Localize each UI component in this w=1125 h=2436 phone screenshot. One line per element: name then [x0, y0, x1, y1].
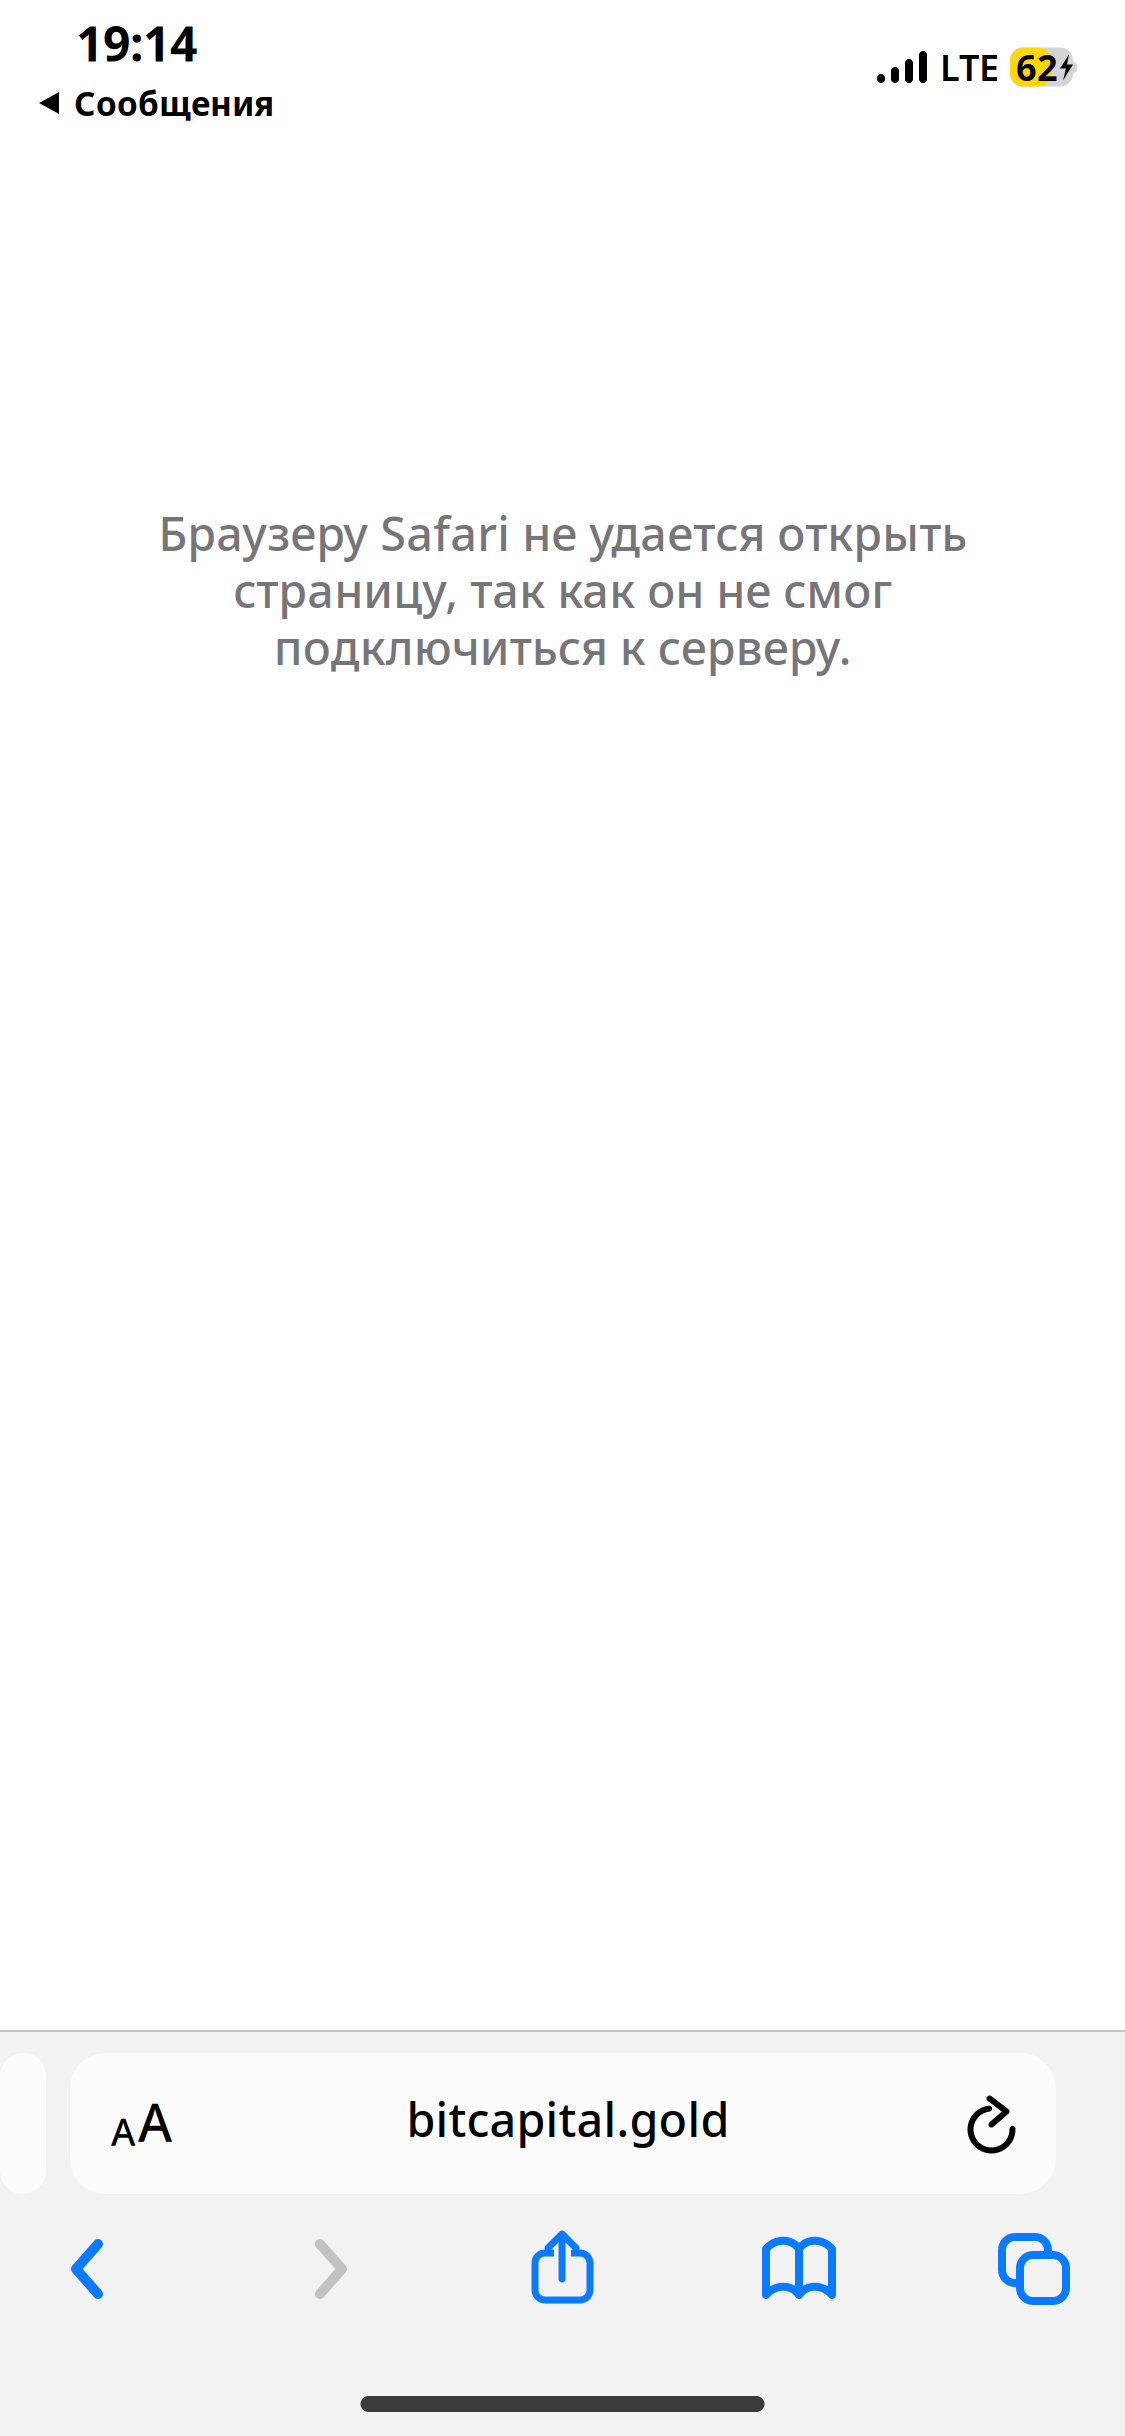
- button[interactable]: Back: [0, 2229, 174, 2309]
- button[interactable]: Forward: [174, 2229, 488, 2309]
- staticText: 62: [1016, 43, 1058, 91]
- staticText: bitcapital.gold: [406, 2088, 729, 2150]
- staticText: Сообщения: [74, 81, 274, 125]
- staticText: A: [111, 2106, 135, 2156]
- staticText: Браузеру Safari не удается открыть стран…: [158, 502, 967, 678]
- staticText: A: [138, 2087, 172, 2156]
- button[interactable]: Share: [488, 2229, 638, 2309]
- button[interactable]: Reload: [924, 2053, 1056, 2194]
- staticText: LTE: [940, 43, 999, 91]
- staticText: 19:14: [76, 11, 197, 75]
- button[interactable]: Сообщения: [0, 77, 298, 129]
- button[interactable]: Bookmarks: [638, 2229, 960, 2309]
- button[interactable]: Page settings: [70, 2053, 212, 2194]
- button[interactable]: Tabs: [960, 2229, 1108, 2309]
